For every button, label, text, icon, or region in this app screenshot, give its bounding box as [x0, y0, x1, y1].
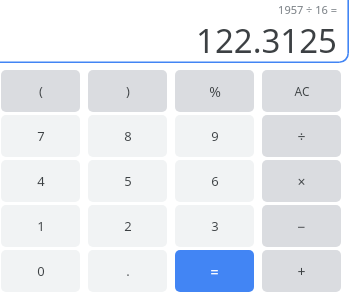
staticText: .: [126, 262, 130, 280]
staticText: =: [210, 262, 219, 281]
button[interactable]: Open parenthesis: [1, 70, 80, 112]
button[interactable]: Decimal point: [88, 250, 167, 292]
button[interactable]: 7: [1, 115, 80, 157]
button[interactable]: 3: [175, 205, 254, 247]
button[interactable]: Close parenthesis: [88, 70, 167, 112]
button[interactable]: 8: [88, 115, 167, 157]
staticText: 0: [37, 262, 45, 280]
staticText: 5: [124, 172, 132, 190]
staticText: ÷: [297, 127, 306, 146]
button[interactable]: 6: [175, 160, 254, 202]
staticText: ): [126, 82, 130, 100]
button[interactable]: Add: [262, 250, 341, 292]
button[interactable]: 1: [1, 205, 80, 247]
button[interactable]: 0: [1, 250, 80, 292]
staticText: 7: [37, 127, 45, 145]
staticText: 3: [211, 217, 219, 235]
button[interactable]: Subtract: [262, 205, 341, 247]
button[interactable]: Percent: [175, 70, 254, 112]
button[interactable]: 2: [88, 205, 167, 247]
staticText: 4: [37, 172, 45, 190]
staticText: 1957 ÷ 16 =: [278, 2, 337, 17]
staticText: ×: [297, 172, 306, 191]
button[interactable]: 4: [1, 160, 80, 202]
staticText: 8: [124, 127, 132, 145]
staticText: 122.3125: [196, 18, 337, 63]
staticText: AC: [294, 83, 310, 99]
staticText: %: [209, 82, 221, 101]
staticText: 2: [124, 217, 132, 235]
button[interactable]: Equals: [175, 250, 254, 292]
staticText: +: [297, 262, 306, 281]
button[interactable]: All clear: [262, 70, 341, 112]
staticText: (: [39, 82, 43, 100]
button[interactable]: Divide: [262, 115, 341, 157]
button[interactable]: 9: [175, 115, 254, 157]
staticText: 6: [211, 172, 219, 190]
staticText: 9: [211, 127, 219, 145]
staticText: 1: [37, 217, 45, 235]
staticText: −: [297, 217, 306, 236]
button[interactable]: 5: [88, 160, 167, 202]
button[interactable]: Multiply: [262, 160, 341, 202]
